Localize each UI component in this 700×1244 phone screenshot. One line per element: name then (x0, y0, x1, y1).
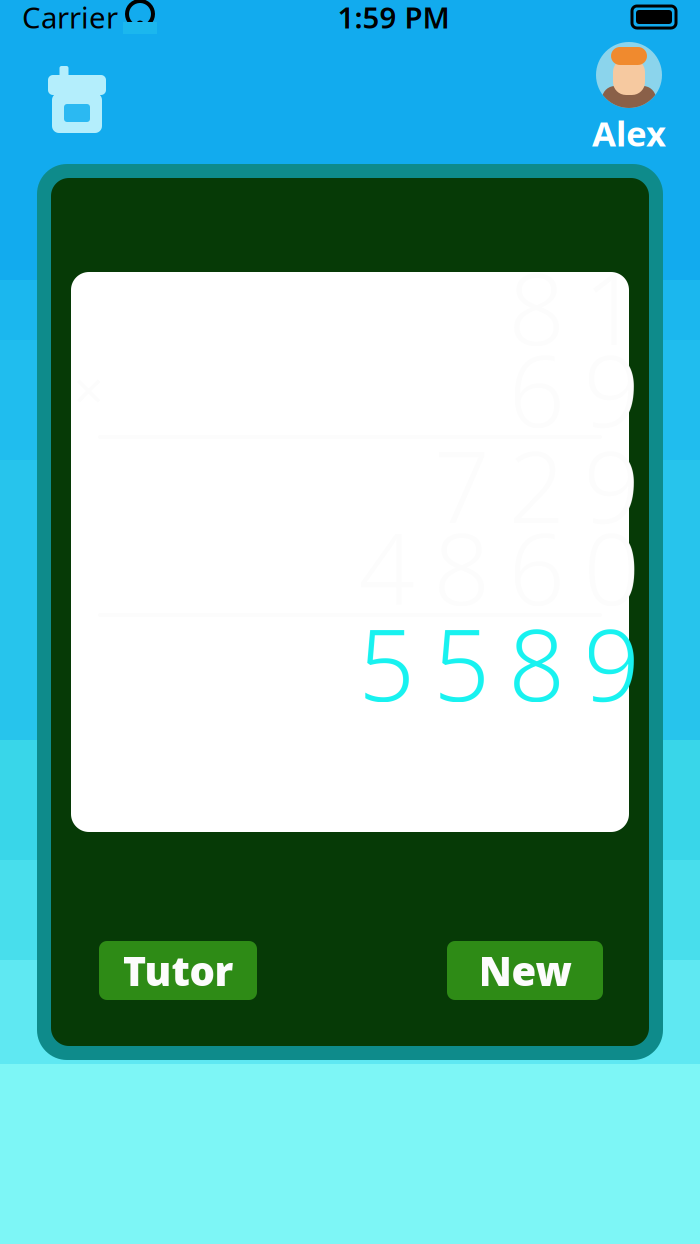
staticText: 1 (583, 241, 639, 372)
staticText: 9 (583, 323, 639, 454)
button[interactable]: Tutor (99, 941, 257, 1000)
staticText: 9 (583, 597, 639, 728)
staticText (373, 241, 399, 372)
button[interactable]: Home (34, 61, 110, 137)
staticText: New (478, 944, 571, 997)
staticText: 0 (583, 501, 639, 632)
staticText: Carrier (22, 0, 118, 36)
staticText: 8 (433, 501, 489, 632)
staticText: 5 (358, 597, 414, 728)
staticText: 9 (583, 419, 639, 550)
staticText: 6 (508, 501, 564, 632)
staticText: Alex (592, 110, 666, 156)
staticText: Tutor (122, 944, 233, 997)
staticText: 1:59 PM (337, 0, 449, 36)
staticText: 5 (433, 597, 489, 728)
staticText: 8 (508, 241, 564, 372)
button[interactable]: Profile: Alex (592, 42, 666, 156)
staticText: 8 (508, 597, 564, 728)
staticText (448, 241, 474, 372)
button[interactable]: New (447, 941, 603, 1000)
staticText: 4 (358, 501, 414, 632)
